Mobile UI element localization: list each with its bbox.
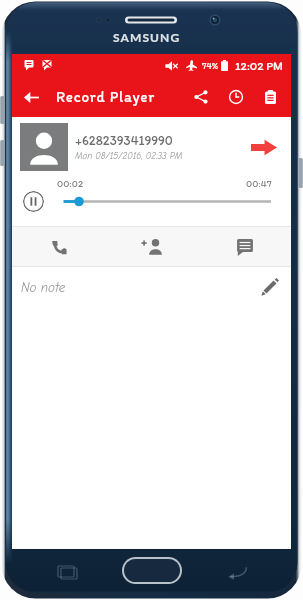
button[interactable]: Share: [183, 77, 218, 117]
button[interactable]: Call: [12, 227, 105, 266]
button[interactable]: Add contact: [105, 227, 198, 266]
button[interactable]: Back: [12, 77, 50, 117]
staticText: 12:02 PM: [235, 59, 283, 73]
staticText: Mon 08/15/2016, 02:33 PM: [75, 151, 183, 161]
staticText: 00:47: [246, 177, 272, 189]
staticText: 74%: [202, 60, 219, 71]
button[interactable]: History: [218, 77, 253, 117]
staticText: No note: [21, 280, 66, 295]
button[interactable]: Pause: [23, 191, 44, 212]
button[interactable]: +6282393419990: [12, 117, 291, 177]
button[interactable]: Notes: [253, 77, 288, 117]
button[interactable]: Message: [198, 227, 291, 266]
staticText: 00:02: [57, 177, 84, 189]
staticText: SAMSUNG: [113, 30, 181, 44]
button[interactable]: No note: [12, 267, 291, 307]
staticText: Record Player: [56, 88, 155, 106]
staticText: +6282393419990: [75, 133, 173, 149]
